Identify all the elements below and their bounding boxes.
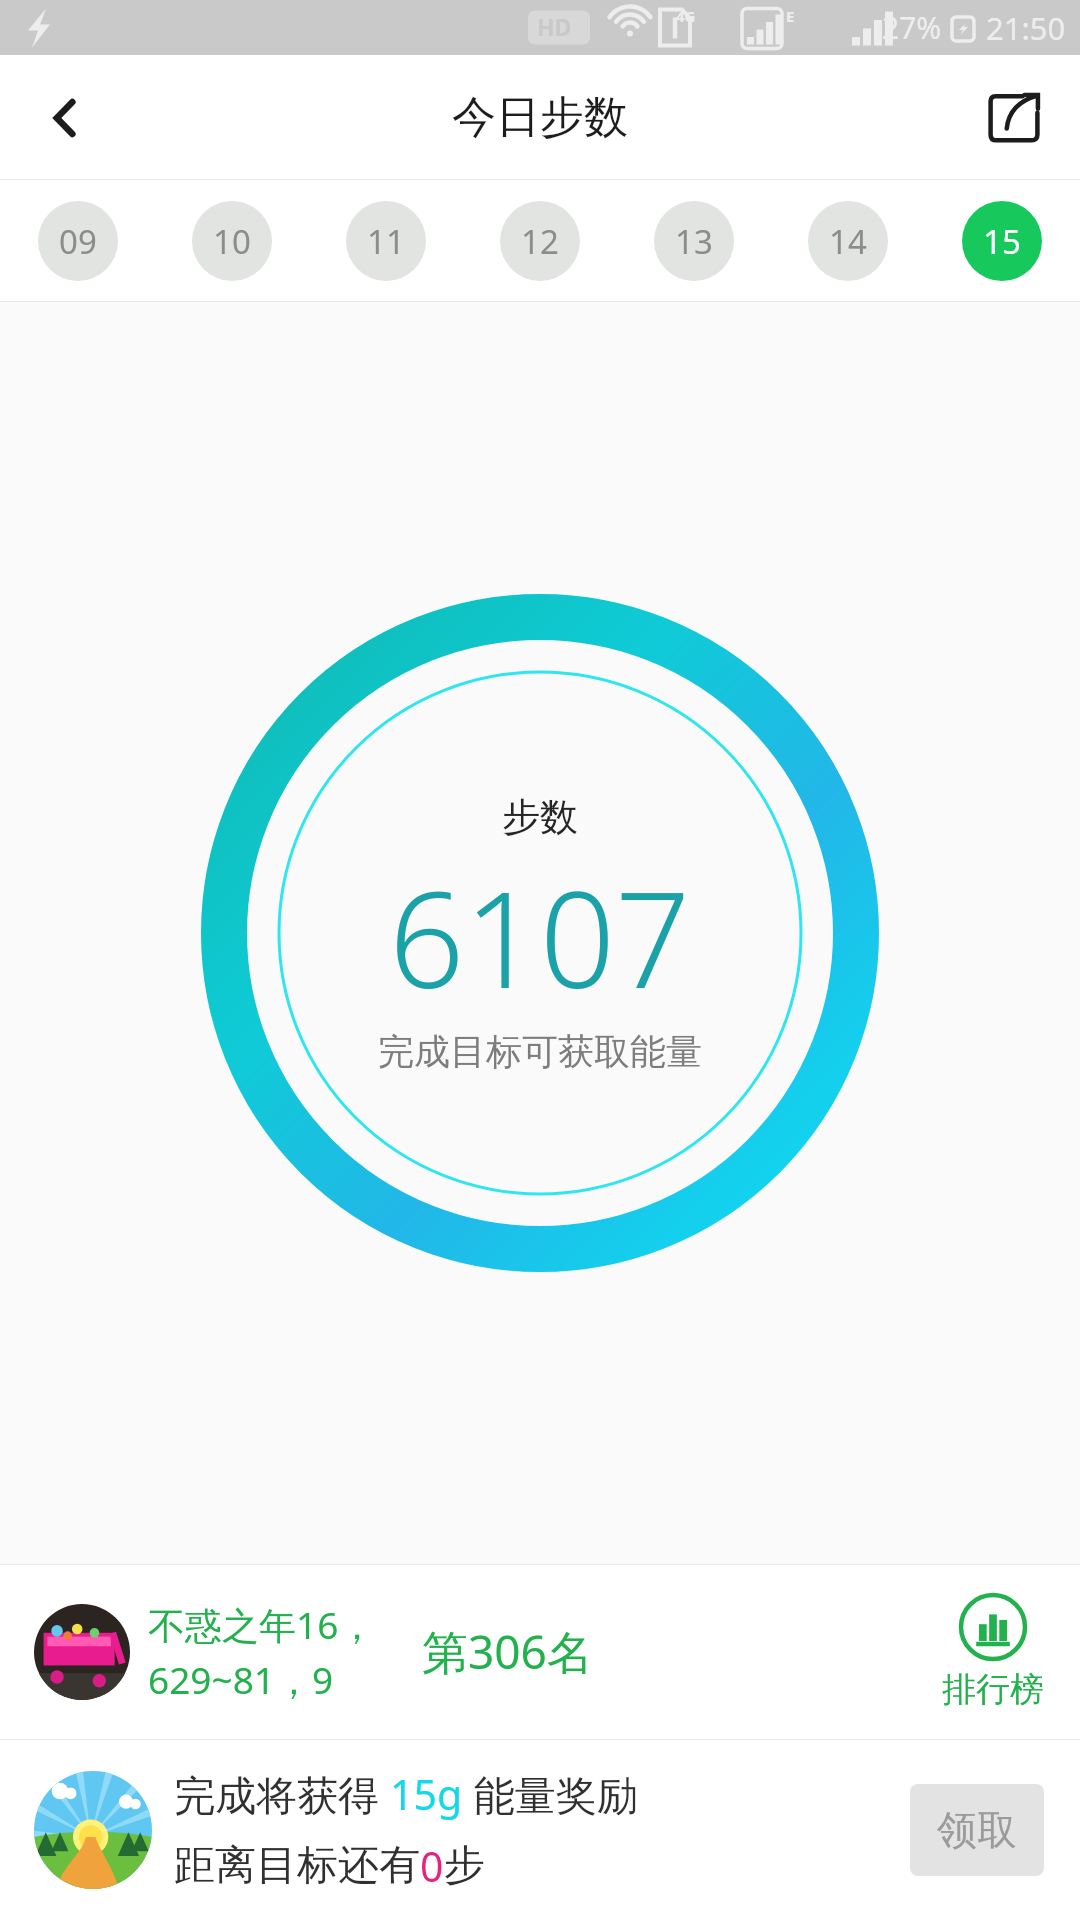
button[interactable]: 14 (808, 201, 888, 281)
staticText: E (786, 6, 795, 26)
staticText: 排行榜 (942, 1668, 1044, 1711)
button[interactable]: Share (972, 76, 1056, 160)
staticText: HD (537, 11, 572, 42)
staticText: 15g (390, 1766, 463, 1822)
staticText: 15 (983, 219, 1021, 264)
button[interactable]: 15 (962, 201, 1042, 281)
staticText: 不惑之年16， (148, 1599, 376, 1650)
button[interactable]: 不惑之年16， (0, 1564, 1080, 1739)
staticText: 领取 (937, 1805, 1017, 1855)
staticText: 14 (829, 219, 867, 264)
staticText: 13 (675, 219, 713, 264)
staticText: 11 (367, 219, 405, 264)
staticText: 10 (213, 219, 251, 264)
staticText: 步数 (502, 793, 578, 841)
staticText: 距离目标还有 (174, 1840, 420, 1892)
staticText: 27% (882, 7, 942, 48)
button[interactable]: 10 (192, 201, 272, 281)
staticText: 6107 (389, 847, 691, 1027)
button[interactable]: 排行榜 (932, 1592, 1054, 1711)
button[interactable]: 11 (346, 201, 426, 281)
staticText: 12 (521, 219, 559, 264)
staticText: 629~81，9 (148, 1654, 334, 1705)
staticText: 第306名 (422, 1620, 593, 1683)
staticText: 4G (676, 6, 696, 26)
button[interactable]: 09 (38, 201, 118, 281)
staticText: 完成将获得 (174, 1766, 390, 1822)
staticText: 09 (59, 219, 97, 264)
staticText: 能量奖励 (463, 1766, 638, 1822)
button[interactable]: 12 (500, 201, 580, 281)
button[interactable]: Back (28, 80, 104, 156)
staticText: 0 (420, 1838, 444, 1894)
staticText: 今日步数 (452, 90, 628, 145)
staticText: 21:50 (986, 7, 1066, 49)
button[interactable]: 领取 (910, 1784, 1044, 1876)
button[interactable]: 13 (654, 201, 734, 281)
staticText: 完成目标可获取能量 (378, 1029, 702, 1074)
staticText: 步 (444, 1840, 485, 1892)
